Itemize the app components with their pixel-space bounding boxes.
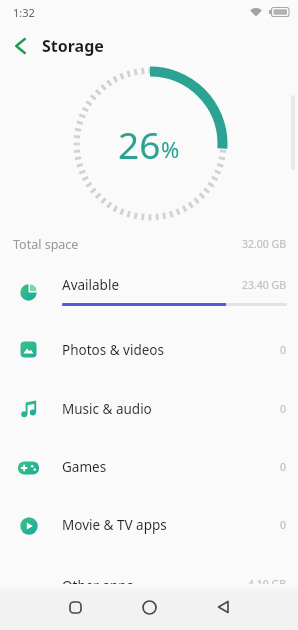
button[interactable]: Games — [0, 438, 298, 496]
staticText: 1:32 — [13, 5, 35, 20]
staticText: Games — [62, 458, 107, 476]
staticText: Photos & videos — [62, 341, 164, 359]
staticText: Storage — [42, 35, 104, 57]
button[interactable]: Movie & TV apps — [0, 496, 298, 554]
staticText: Other apps — [62, 577, 134, 595]
staticText: 4.10 GB — [248, 577, 287, 591]
staticText: 26 — [118, 119, 161, 169]
staticText: Music & audio — [62, 400, 152, 418]
button[interactable] — [0, 24, 40, 68]
staticText: 0 — [280, 343, 287, 357]
button[interactable]: Music & audio — [0, 379, 298, 438]
staticText: Movie & TV apps — [62, 516, 167, 534]
staticText: Total space — [13, 236, 79, 253]
staticText: 0 — [280, 402, 287, 416]
staticText: 0 — [280, 518, 287, 532]
staticText: 32.00 GB — [242, 237, 287, 251]
button[interactable] — [38, 584, 112, 630]
staticText: 0 — [280, 460, 287, 474]
button[interactable] — [112, 584, 186, 630]
button[interactable] — [186, 584, 260, 630]
button[interactable]: Photos & videos — [0, 320, 298, 379]
button[interactable]: Available — [0, 262, 298, 320]
staticText: Available — [62, 276, 119, 294]
staticText: % — [161, 134, 180, 164]
button[interactable]: Other apps — [0, 554, 298, 610]
staticText: 23.40 GB — [242, 278, 287, 292]
